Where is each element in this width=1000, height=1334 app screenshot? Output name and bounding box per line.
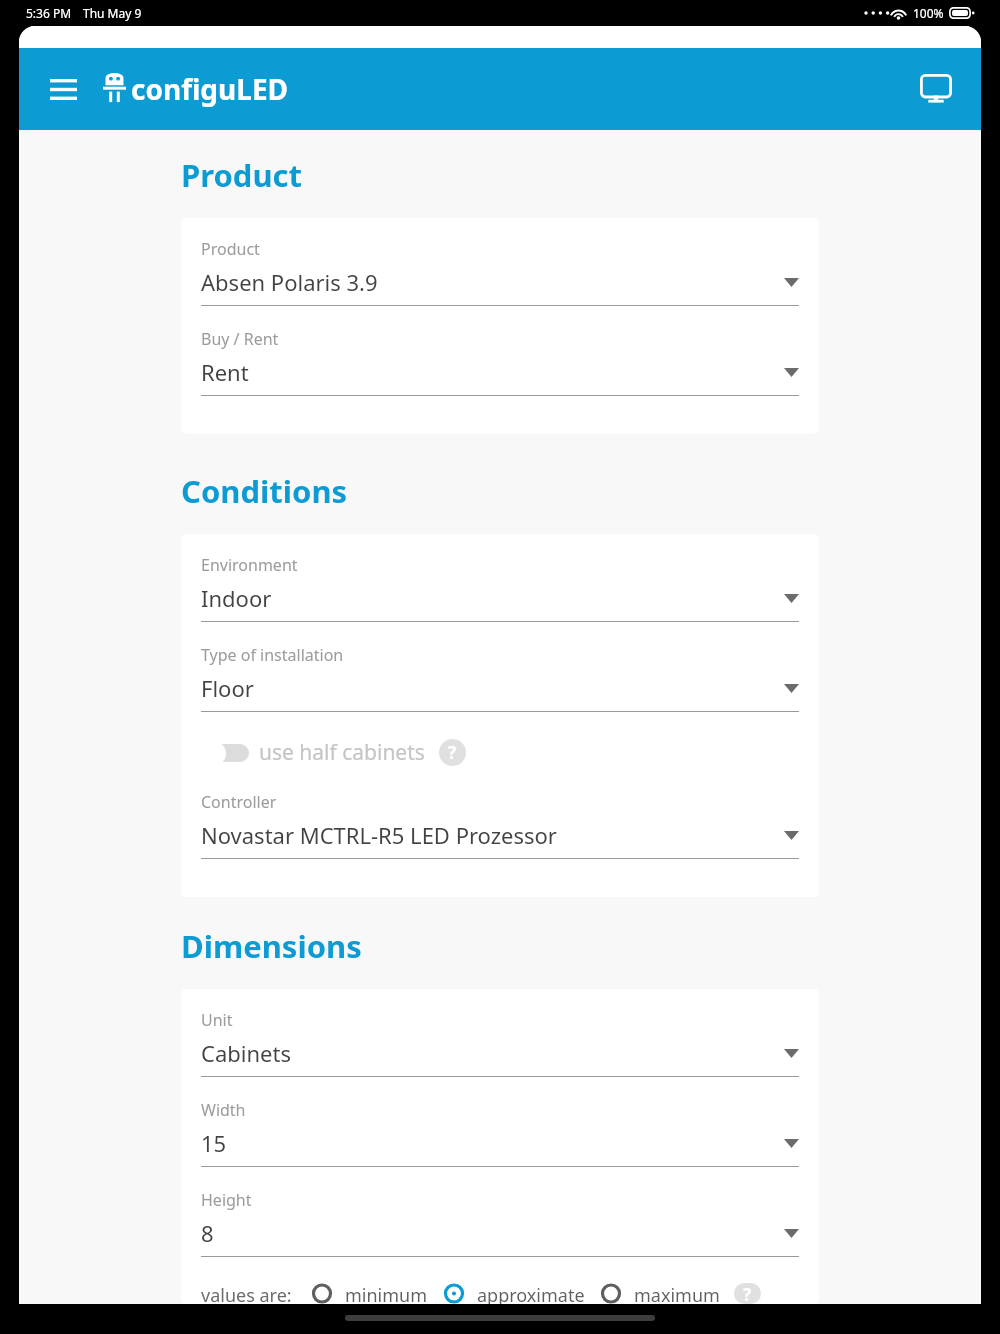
staticText: Unit [201, 1009, 233, 1031]
button[interactable]: maximum [597, 1283, 720, 1304]
staticText: approximate [477, 1283, 585, 1304]
button[interactable]: Width [201, 1099, 799, 1167]
staticText: Conditions [181, 470, 348, 512]
staticText: Cabinets [201, 1038, 784, 1068]
button[interactable]: Unit [201, 1009, 799, 1077]
staticText: Dimensions [181, 925, 362, 967]
staticText: Absen Polaris 3.9 [201, 267, 784, 297]
button[interactable]: Height [201, 1189, 799, 1257]
staticText: ? [743, 1283, 752, 1304]
button[interactable]: Type of installation [201, 644, 799, 712]
staticText: 15 [201, 1128, 784, 1158]
staticText: ? [448, 741, 457, 764]
staticText: Buy / Rent [201, 328, 279, 350]
staticText: minimum [345, 1283, 428, 1304]
button[interactable]: Open navigation menu [41, 67, 85, 111]
button[interactable]: Help [734, 1283, 761, 1304]
staticText: Floor [201, 673, 784, 703]
staticText: Novastar MCTRL-R5 LED Prozessor [201, 820, 784, 850]
staticText: Height [201, 1189, 252, 1211]
staticText: 100% [913, 5, 944, 21]
button[interactable]: Display preview [911, 64, 961, 114]
staticText: 5:36 PM [26, 5, 72, 21]
button[interactable]: Environment [201, 554, 799, 622]
staticText: Width [201, 1099, 246, 1121]
staticText: Rent [201, 357, 784, 387]
staticText: 8 [201, 1218, 784, 1248]
staticText: maximum [634, 1283, 720, 1304]
staticText: Product [201, 238, 260, 260]
staticText: use half cabinets [259, 738, 425, 767]
staticText: Indoor [201, 583, 784, 613]
staticText: Type of installation [201, 644, 344, 666]
staticText: Thu May 9 [83, 5, 142, 21]
button[interactable]: approximate [440, 1283, 585, 1304]
staticText: Controller [201, 791, 277, 813]
button[interactable]: minimum [308, 1283, 428, 1304]
staticText: Product [181, 154, 303, 196]
button[interactable]: Product [201, 238, 799, 306]
button[interactable]: Help [439, 739, 466, 766]
button[interactable]: Buy / Rent [201, 328, 799, 396]
button[interactable]: use half cabinets [201, 738, 466, 767]
staticText: configuLED [131, 70, 289, 108]
staticText: Environment [201, 554, 298, 576]
staticText: values are: [201, 1283, 292, 1304]
button[interactable]: Controller [201, 791, 799, 859]
